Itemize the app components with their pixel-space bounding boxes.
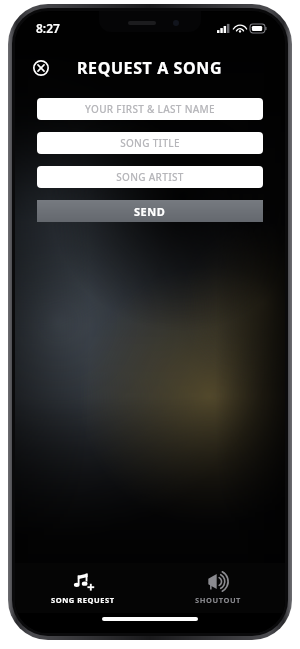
staticText: SONG REQUEST <box>51 595 115 605</box>
staticText: SONG ARTIST <box>116 170 184 184</box>
staticText: SONG TITLE <box>120 136 180 150</box>
staticText: SHOUTOUT <box>195 595 241 605</box>
staticText: 8:27 <box>36 20 60 36</box>
button[interactable]: SHOUTOUT <box>150 563 285 613</box>
button[interactable]: YOUR FIRST & LAST NAME <box>37 98 263 120</box>
button[interactable]: Close <box>28 55 54 81</box>
staticText: REQUEST A SONG <box>77 57 223 79</box>
button[interactable]: SONG REQUEST <box>15 563 150 613</box>
staticText: SEND <box>134 204 166 219</box>
staticText: YOUR FIRST & LAST NAME <box>85 102 215 116</box>
button[interactable]: SEND <box>37 200 263 222</box>
button[interactable]: SONG TITLE <box>37 132 263 154</box>
button[interactable]: SONG ARTIST <box>37 166 263 188</box>
